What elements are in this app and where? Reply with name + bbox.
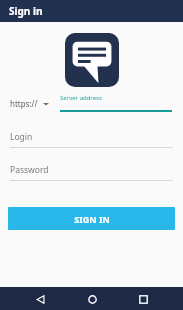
staticText: Password bbox=[10, 164, 49, 176]
staticText: Server address bbox=[60, 94, 102, 102]
staticText: SIGN IN bbox=[74, 213, 110, 225]
button[interactable]: Recent apps bbox=[132, 288, 154, 310]
staticText: Sign in bbox=[9, 4, 43, 18]
button[interactable]: Login bbox=[10, 131, 173, 148]
button[interactable]: Home bbox=[81, 288, 103, 310]
button[interactable]: Server address bbox=[60, 94, 172, 112]
staticText: Login bbox=[10, 131, 33, 143]
staticText: https:// bbox=[10, 98, 38, 109]
button[interactable]: Back bbox=[29, 288, 51, 310]
button[interactable]: https:// bbox=[10, 98, 56, 112]
button[interactable]: SIGN IN bbox=[8, 207, 175, 230]
button[interactable]: Password bbox=[10, 164, 173, 181]
